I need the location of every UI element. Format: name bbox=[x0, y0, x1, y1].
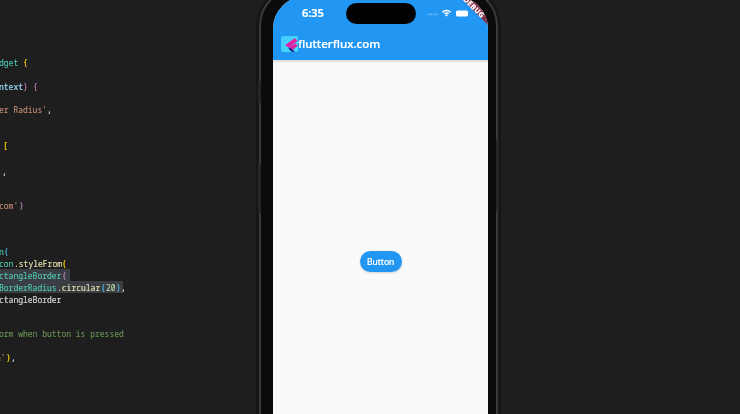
staticText: .styleFrom bbox=[14, 258, 62, 269]
staticText: dget bbox=[0, 57, 23, 68]
staticText: er Radius' bbox=[0, 104, 47, 115]
staticText: { bbox=[33, 81, 38, 92]
staticText: 20 bbox=[106, 282, 116, 293]
staticText: ctangleBorder bbox=[0, 294, 62, 305]
staticText: [ bbox=[3, 140, 8, 151]
other: Status icons bbox=[425, 6, 469, 20]
staticText: ntext bbox=[0, 81, 23, 92]
staticText: ctangleBorder bbox=[0, 270, 62, 281]
staticText: .circular bbox=[57, 282, 101, 293]
staticText: Button bbox=[367, 256, 395, 268]
staticText: flutterflux.com bbox=[298, 36, 381, 52]
staticText: ( bbox=[4, 246, 9, 257]
staticText: ) bbox=[6, 352, 11, 363]
staticText: ) bbox=[116, 282, 121, 293]
staticText: n' bbox=[0, 352, 6, 363]
staticText: , bbox=[121, 282, 126, 293]
staticText: BorderRadius bbox=[0, 282, 57, 293]
staticText: orm when button is pressed bbox=[0, 328, 124, 339]
staticText: , bbox=[2, 166, 7, 177]
staticText: ( bbox=[101, 282, 106, 293]
staticText: com' bbox=[0, 200, 19, 211]
staticText: ( bbox=[62, 258, 67, 269]
staticText: ) bbox=[23, 81, 28, 92]
staticText: , bbox=[11, 352, 16, 363]
staticText: con bbox=[0, 258, 14, 269]
staticText: { bbox=[23, 57, 28, 68]
staticText: n bbox=[0, 246, 4, 257]
button[interactable]: flutterflux.com bbox=[281, 32, 381, 56]
staticText: ( bbox=[62, 270, 67, 281]
staticText: 6:35 bbox=[302, 5, 324, 20]
staticText: ) bbox=[19, 200, 24, 211]
button[interactable]: Button bbox=[360, 251, 402, 272]
staticText: , bbox=[47, 104, 52, 115]
